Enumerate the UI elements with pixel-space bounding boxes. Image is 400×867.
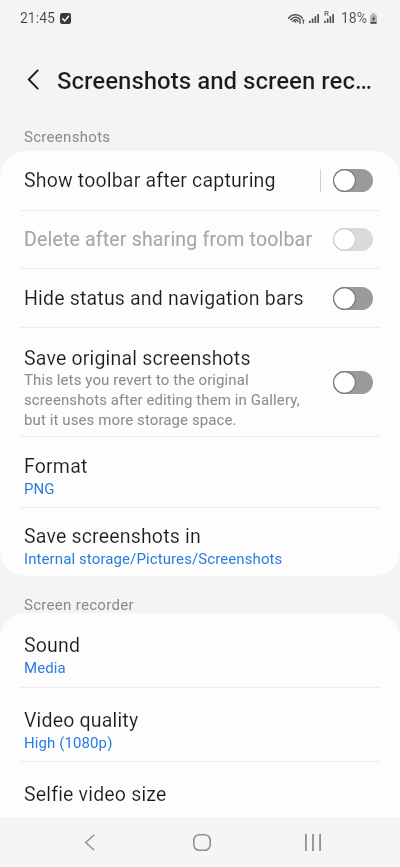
button[interactable]: Selfie video size [0,762,400,817]
staticText: Hide status and navigation bars [24,287,320,310]
staticText: Internal storage/Pictures/Screenshots [24,550,283,568]
button[interactable]: Save screenshots in [0,508,400,576]
button[interactable]: Video quality [0,688,400,761]
button[interactable]: Toggle [333,371,373,394]
staticText: Format [24,455,88,478]
button[interactable]: Home [174,824,230,860]
staticText: R [324,9,329,18]
button[interactable]: Format [0,437,400,507]
staticText: Screenshots and screen rec… [57,67,372,95]
button[interactable]: Show toolbar after capturing [0,151,400,210]
staticText: 18% [341,10,367,26]
staticText: Delete after sharing from toolbar [24,228,320,251]
staticText: Save original screenshots [24,347,251,370]
staticText: Selfie video size [24,783,167,806]
staticText: High (1080p) [24,734,113,752]
staticText: Media [24,659,66,677]
button[interactable]: Toggle [333,169,373,192]
staticText: PNG [24,480,55,498]
button[interactable]: Navigate up [5,61,61,97]
staticText: Sound [24,634,81,657]
button[interactable]: Sound [0,613,400,687]
staticText: 21:45 [20,10,55,26]
staticText: Video quality [24,709,139,732]
staticText: Save screenshots in [24,525,201,548]
staticText: Show toolbar after capturing [24,169,320,192]
staticText: This lets you revert to the original scr… [24,371,319,428]
button[interactable]: Recent apps [285,824,341,860]
button[interactable]: Toggle [333,287,373,310]
button[interactable]: Hide status and navigation bars [0,269,400,327]
button[interactable]: Toggle [333,228,373,251]
staticText: Screenshots [24,128,111,146]
staticText: Screen recorder [24,596,134,614]
button[interactable]: Back [62,824,117,860]
button[interactable]: Save original screenshots [0,328,400,436]
button[interactable]: Delete after sharing from toolbar [0,211,400,268]
